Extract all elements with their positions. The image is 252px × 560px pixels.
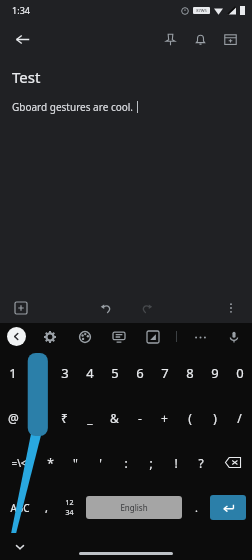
button[interactable]: More (189, 326, 211, 348)
staticText: & (110, 410, 119, 426)
button[interactable]: 9 (202, 350, 227, 395)
button[interactable]: Hide keyboard (10, 537, 30, 557)
staticText: : (124, 455, 128, 471)
staticText: * (47, 455, 54, 471)
button[interactable]: . (186, 485, 207, 530)
staticText: 7 (161, 364, 169, 382)
button[interactable]: : (113, 440, 138, 485)
staticText: ABC (10, 501, 30, 515)
staticText: , (45, 500, 48, 515)
staticText: English (120, 502, 148, 513)
button[interactable]: 7 (152, 350, 177, 395)
button[interactable]: * (38, 440, 63, 485)
button[interactable]: Backspace (213, 440, 252, 485)
button[interactable]: " (63, 440, 88, 485)
staticText: 6 (136, 364, 144, 382)
button[interactable]: Stickers (108, 326, 130, 348)
staticText: 12 (65, 498, 74, 508)
button[interactable]: / (227, 395, 252, 440)
staticText: 9 (211, 364, 219, 382)
button[interactable]: ABC (3, 485, 36, 530)
staticText: 1 (9, 364, 17, 382)
button[interactable]: 0 (227, 350, 252, 395)
staticText: ? (198, 455, 204, 471)
button[interactable]: Themes (74, 326, 96, 348)
staticText: =\< (11, 456, 27, 470)
button[interactable]: ' (88, 440, 113, 485)
button[interactable]: Redo (133, 295, 159, 321)
button[interactable]: 5 (102, 350, 127, 395)
button[interactable]: English (86, 496, 182, 519)
button[interactable]: , (36, 485, 57, 530)
button[interactable]: One handed mode (142, 326, 164, 348)
staticText: 4 (86, 364, 94, 382)
button[interactable]: + (152, 395, 177, 440)
button[interactable]: Enter (210, 495, 246, 520)
staticText: Test (12, 67, 41, 87)
button[interactable]: Reminder (185, 24, 215, 54)
button[interactable]: 3 (52, 350, 77, 395)
staticText: ) (213, 410, 217, 426)
staticText: 87W5 (196, 8, 207, 13)
button[interactable]: ? (188, 440, 213, 485)
button[interactable]: Settings (39, 326, 61, 348)
staticText: + (161, 410, 168, 426)
button[interactable]: Pin (155, 24, 185, 54)
staticText: 34 (65, 508, 74, 518)
staticText: ₹ (61, 410, 68, 426)
staticText: . (195, 500, 198, 515)
staticText: @ (8, 410, 19, 426)
button[interactable]: Add (9, 296, 33, 320)
button[interactable]: 4 (77, 350, 102, 395)
button[interactable]: ; (138, 440, 163, 485)
staticText: " (73, 455, 78, 471)
button[interactable]: Numbers (57, 485, 82, 530)
button[interactable]: ! (163, 440, 188, 485)
button[interactable]: Voice input (223, 326, 245, 348)
button[interactable]: Expand toolbar (7, 327, 26, 346)
button[interactable]: - (127, 395, 152, 440)
staticText: - (138, 410, 142, 426)
staticText: _ (87, 410, 93, 426)
button[interactable]: Back (7, 24, 37, 54)
staticText: 8 (186, 364, 194, 382)
button[interactable]: ) (202, 395, 227, 440)
button[interactable]: & (102, 395, 127, 440)
button[interactable]: # (26, 395, 52, 440)
staticText: ; (149, 455, 153, 471)
button[interactable]: Archive (215, 24, 245, 54)
button[interactable]: More options (219, 296, 243, 320)
staticText: 3 (61, 364, 69, 382)
button[interactable]: 1 (0, 350, 26, 395)
button[interactable]: Undo (93, 295, 119, 321)
button[interactable]: =\< (0, 440, 38, 485)
button[interactable]: 2 (26, 350, 52, 395)
staticText: Gboard gestures are cool. (12, 100, 134, 114)
staticText: 0 (236, 364, 244, 382)
button[interactable]: 6 (127, 350, 152, 395)
staticText: ! (174, 455, 178, 471)
button[interactable]: ₹ (52, 395, 77, 440)
button[interactable]: 8 (177, 350, 202, 395)
button[interactable]: _ (77, 395, 102, 440)
button[interactable]: @ (0, 395, 26, 440)
staticText: 5 (111, 364, 119, 382)
button[interactable]: ( (177, 395, 202, 440)
staticText: ( (188, 410, 192, 426)
staticText: ' (99, 455, 102, 471)
staticText: 1:34 (12, 4, 30, 16)
staticText: / (237, 410, 242, 426)
